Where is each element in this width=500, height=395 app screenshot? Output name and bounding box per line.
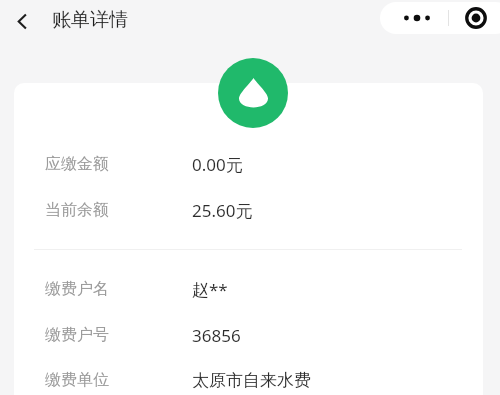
button[interactable]: Back xyxy=(2,1,42,41)
button[interactable]: Water utility xyxy=(218,58,288,128)
staticText: 账单详情 xyxy=(52,8,128,32)
button[interactable]: 缴费户名 xyxy=(0,275,500,303)
staticText: 36856 xyxy=(192,324,241,347)
staticText: 赵** xyxy=(192,278,228,301)
button[interactable]: More options xyxy=(386,2,448,34)
staticText: 缴费户号 xyxy=(45,325,109,345)
button[interactable]: 当前余额 xyxy=(0,196,500,224)
button[interactable]: 缴费户号 xyxy=(0,321,500,349)
staticText: 应缴金额 xyxy=(45,154,109,174)
staticText: 0.00元 xyxy=(192,153,243,176)
button[interactable]: 缴费单位 xyxy=(0,366,500,394)
button[interactable]: 应缴金额 xyxy=(0,150,500,178)
button[interactable]: Close xyxy=(452,2,500,34)
staticText: 缴费单位 xyxy=(45,370,109,390)
staticText: 当前余额 xyxy=(45,200,109,220)
staticText: 太原市自来水费 xyxy=(192,370,311,391)
staticText: 缴费户名 xyxy=(45,279,109,299)
staticText: 25.60元 xyxy=(192,199,253,222)
